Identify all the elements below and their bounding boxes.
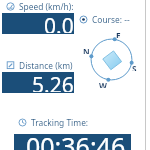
button[interactable]: Tracking time: [18, 117, 89, 128]
staticText: Speed (km/h):: [19, 1, 74, 12]
button[interactable]: 5.26: [2, 72, 74, 93]
staticText: 0.0: [44, 12, 74, 33]
other: Course: [79, 15, 88, 24]
button[interactable]: Course: [79, 14, 130, 25]
button[interactable]: 0.0: [2, 13, 74, 34]
staticText: S: [132, 63, 137, 71]
button[interactable]: Distance: [6, 60, 73, 71]
staticText: 00:36:46: [26, 129, 126, 150]
other: Tracking time: [18, 118, 27, 127]
button[interactable]: 00:36:46: [14, 134, 131, 150]
staticText: N: [83, 46, 90, 54]
button[interactable]: Speed: [6, 1, 74, 12]
staticText: Tracking Time:: [31, 117, 89, 128]
staticText: 5.26: [32, 71, 74, 92]
staticText: Course: --: [92, 14, 130, 25]
staticText: Distance (km): [19, 60, 73, 71]
staticText: E: [116, 30, 121, 38]
other: Distance: [6, 61, 15, 70]
staticText: W: [99, 80, 107, 88]
other: Speed: [6, 2, 15, 11]
